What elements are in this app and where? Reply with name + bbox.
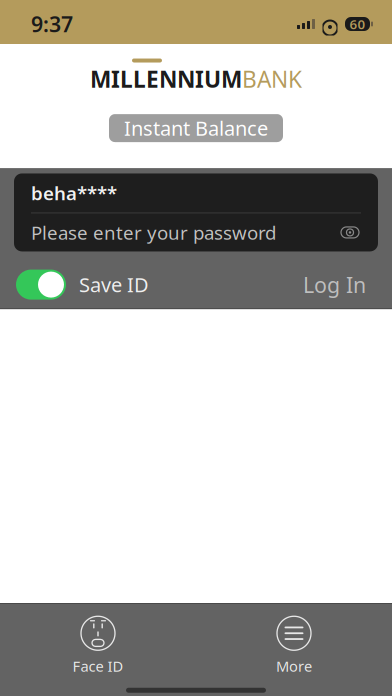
button[interactable]: Instant Balance [109,114,283,142]
staticText: 9:37 [31,10,73,38]
staticText: BANK [242,64,302,94]
button[interactable]: Log In [285,262,384,307]
button[interactable]: Please enter your password [14,213,378,251]
button[interactable]: beha**** [14,173,378,212]
button[interactable]: Save ID [0,264,149,306]
staticText: Please enter your password [31,220,276,245]
staticText: Log In [303,270,366,299]
staticText: beha**** [31,180,117,205]
staticText: 60 [349,15,365,33]
staticText: Face ID [72,656,123,676]
staticText: MILLENNIUM [90,64,242,94]
button[interactable]: Face ID [55,611,141,680]
button[interactable]: More [251,611,337,680]
staticText: Save ID [79,271,149,298]
staticText: More [276,656,312,676]
staticText: Instant Balance [124,115,268,141]
